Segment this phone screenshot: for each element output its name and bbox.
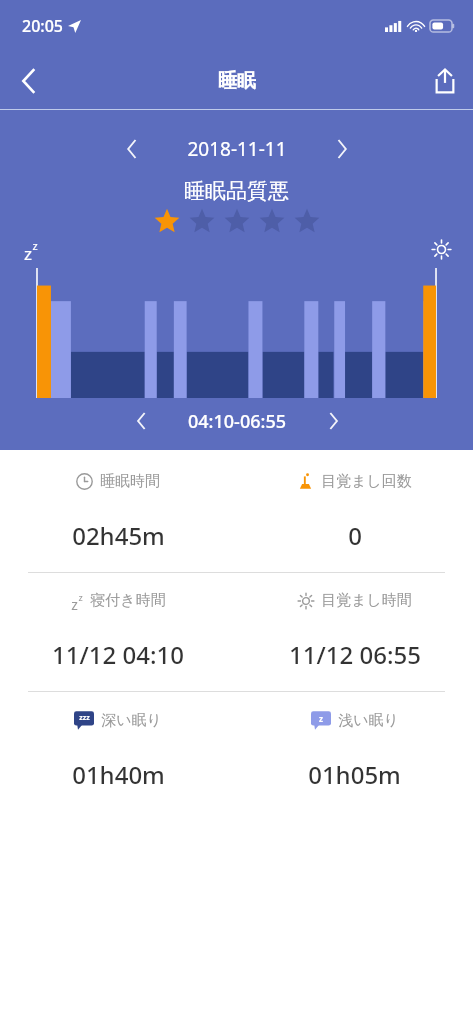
staticText: 11/12 06:55 <box>289 638 421 671</box>
button[interactable]: Previous day <box>115 132 149 166</box>
staticText: 目覚まし時間 <box>321 591 412 610</box>
staticText: 01h40m <box>72 758 165 791</box>
staticText: z <box>319 713 323 724</box>
staticText: 睡眠時間 <box>100 472 160 491</box>
staticText: z <box>24 242 32 265</box>
button[interactable]: zzz <box>0 706 236 795</box>
staticText: 寝付き時間 <box>90 591 166 610</box>
button[interactable]: Share <box>417 53 473 109</box>
button[interactable]: z <box>236 706 473 795</box>
staticText: 01h05m <box>308 758 401 791</box>
staticText: 20:05 <box>22 15 63 37</box>
staticText: 浅い眠り <box>338 711 399 730</box>
staticText: 2018-11-11 <box>187 136 287 162</box>
staticText: z <box>78 591 83 603</box>
staticText: z <box>32 238 38 253</box>
staticText: z <box>71 595 78 614</box>
button[interactable]: z <box>0 587 236 675</box>
button[interactable]: Previous period <box>124 404 158 438</box>
button[interactable]: Next period <box>316 404 350 438</box>
staticText: 0 <box>348 519 362 552</box>
staticText: zzz <box>79 713 90 723</box>
staticText: 睡眠品質悪 <box>184 178 289 204</box>
staticText: 04:10-06:55 <box>188 409 286 434</box>
staticText: 02h45m <box>72 519 165 552</box>
button[interactable]: 目覚まし時間 <box>236 587 473 675</box>
staticText: 11/12 04:10 <box>52 638 184 671</box>
button[interactable]: Back <box>0 53 56 109</box>
staticText: 深い眠り <box>101 711 162 730</box>
button[interactable]: 睡眠時間 <box>0 468 236 556</box>
staticText: 目覚まし回数 <box>321 472 412 491</box>
button[interactable]: 目覚まし回数 <box>236 468 473 556</box>
staticText: 睡眠 <box>218 69 256 93</box>
button[interactable]: Next day <box>325 132 359 166</box>
